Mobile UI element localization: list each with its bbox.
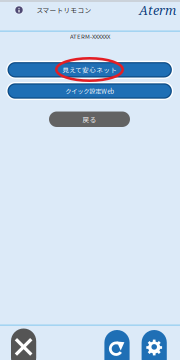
button[interactable]: 見えて安心ネット bbox=[6, 61, 173, 79]
staticText: ATERM-XXXXXX bbox=[70, 32, 110, 40]
button[interactable]: Information bbox=[0, 2, 36, 17]
button[interactable]: 戻る bbox=[49, 111, 130, 127]
staticText: 戻る bbox=[82, 114, 96, 124]
staticText: スマートリモコン bbox=[36, 5, 91, 15]
staticText: 見えて安心ネット bbox=[62, 65, 117, 75]
button[interactable]: Close bbox=[11, 328, 36, 358]
button[interactable]: Reload bbox=[104, 330, 130, 360]
button[interactable]: Settings bbox=[142, 330, 167, 360]
staticText: クイック設定Web bbox=[65, 86, 114, 96]
staticText: Aterm bbox=[139, 1, 176, 19]
button[interactable]: クイック設定Web bbox=[6, 82, 173, 100]
